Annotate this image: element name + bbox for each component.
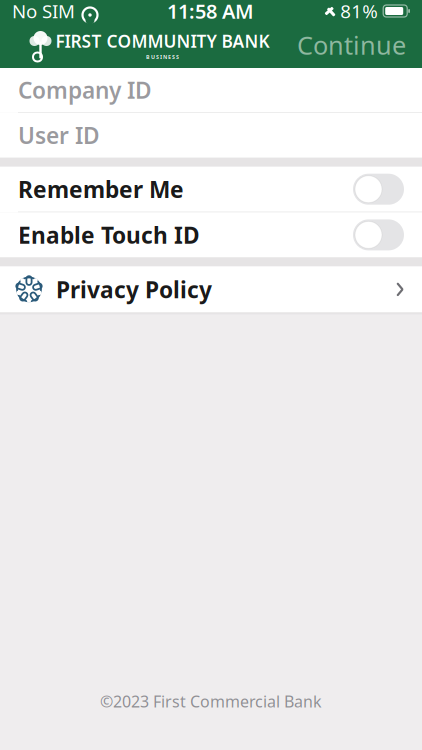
staticText: ©2023 First Commercial Bank (100, 691, 322, 712)
button[interactable]: Continue (297, 28, 422, 62)
staticText: User ID (18, 120, 100, 150)
staticText: 81% (340, 0, 378, 23)
staticText: Enable Touch ID (18, 220, 200, 250)
staticText: Continue (297, 28, 406, 62)
button[interactable]: Remember Me (0, 167, 422, 212)
staticText: B U S I N E S S (146, 53, 179, 61)
staticText: Remember Me (18, 174, 184, 204)
staticText: FIRST COMMUNITY BANK (55, 29, 269, 52)
staticText: Company ID (18, 75, 152, 105)
button[interactable]: User ID (0, 113, 422, 158)
staticText: Privacy Policy (56, 274, 212, 304)
button[interactable]: Enable Touch ID (0, 212, 422, 257)
staticText: No SIM (12, 0, 75, 23)
button[interactable]: Privacy Policy (0, 266, 422, 312)
button[interactable]: Company ID (0, 68, 422, 113)
staticText: 11:58 AM (167, 0, 254, 24)
